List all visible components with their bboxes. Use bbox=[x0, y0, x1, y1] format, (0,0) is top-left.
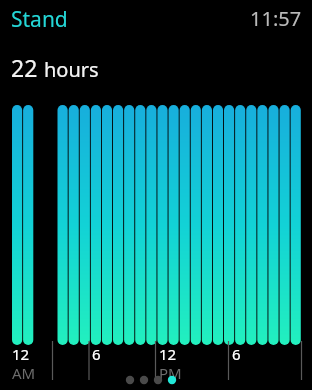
button[interactable]: Stand activity chart bbox=[0, 0, 312, 390]
